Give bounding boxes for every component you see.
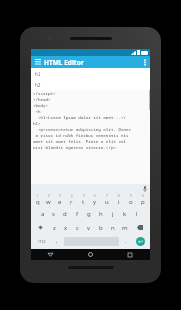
- button[interactable]: </script>: [31, 90, 150, 184]
- staticText: 7: [106, 194, 108, 198]
- staticText: b: [99, 224, 103, 232]
- button[interactable]: v: [83, 221, 95, 234]
- staticText: 0: [142, 194, 144, 198]
- staticText: w: [46, 198, 51, 206]
- staticText: h2: [35, 82, 41, 88]
- staticText: <body>: [33, 103, 49, 109]
- button[interactable]: k: [119, 207, 131, 220]
- button[interactable]: h1: [31, 68, 150, 79]
- button[interactable]: s: [48, 207, 59, 220]
- staticText: 3: [59, 194, 61, 198]
- staticText: s: [52, 210, 55, 218]
- staticText: </script>: [33, 91, 56, 97]
- button[interactable]: 7: [101, 194, 113, 206]
- staticText: <h: [33, 109, 41, 115]
- staticText: x: [64, 224, 68, 232]
- staticText: nisi blandit egestas viverra.</p>: [33, 145, 116, 151]
- button[interactable]: h2: [31, 79, 150, 90]
- staticText: 9: [130, 194, 132, 198]
- button[interactable]: Backspace: [131, 221, 149, 234]
- button[interactable]: .: [120, 235, 131, 248]
- staticText: .: [125, 238, 127, 245]
- staticText: <h1>Lorem Ipsum dolor sit amet...</: [33, 115, 126, 121]
- button[interactable]: 1: [32, 194, 43, 206]
- button[interactable]: 4: [65, 194, 77, 206]
- button[interactable]: ,: [51, 235, 63, 248]
- button[interactable]: z: [49, 221, 60, 234]
- staticText: r: [70, 198, 73, 206]
- staticText: <p>consectetur adipiscing elit. Donec: [33, 127, 131, 133]
- button[interactable]: 9: [125, 194, 137, 206]
- staticText: o: [129, 198, 133, 206]
- staticText: v: [87, 224, 91, 232]
- staticText: h: [99, 210, 103, 218]
- button[interactable]: 3: [54, 194, 65, 206]
- staticText: g: [87, 210, 91, 218]
- button[interactable]: g: [83, 207, 95, 220]
- button[interactable]: More options: [140, 56, 150, 68]
- button[interactable]: 6: [89, 194, 101, 206]
- staticText: m: [122, 224, 128, 232]
- button[interactable]: c: [71, 221, 83, 234]
- staticText: h1>: [33, 121, 41, 127]
- staticText: n: [111, 224, 115, 232]
- button[interactable]: Shift: [32, 221, 49, 234]
- staticText: p: [141, 198, 145, 206]
- staticText: c: [76, 224, 79, 232]
- staticText: i: [118, 198, 120, 206]
- button[interactable]: Back: [31, 249, 70, 260]
- staticText: 8: [118, 194, 120, 198]
- staticText: </head>: [33, 97, 51, 103]
- staticText: 4: [71, 194, 73, 198]
- staticText: q: [36, 198, 40, 206]
- staticText: f: [76, 210, 79, 218]
- button[interactable]: 2: [43, 194, 54, 206]
- button[interactable]: a: [37, 207, 48, 220]
- staticText: e: [58, 198, 62, 206]
- staticText: a: [41, 210, 45, 218]
- staticText: j: [112, 210, 114, 218]
- staticText: 2: [48, 194, 50, 198]
- staticText: amet sit amet felis. Proin a elit vol: [33, 139, 126, 145]
- button[interactable]: Open navigation drawer: [31, 56, 44, 68]
- staticText: HTML Editor: [44, 58, 84, 67]
- staticText: ,: [56, 238, 58, 245]
- button[interactable]: 8: [113, 194, 125, 206]
- button[interactable]: d: [59, 207, 71, 220]
- staticText: a risus id nibh finibus venenatis nis: [33, 133, 129, 139]
- staticText: 6: [94, 194, 96, 198]
- button[interactable]: m: [119, 221, 131, 234]
- staticText: l: [136, 210, 138, 218]
- button[interactable]: f: [71, 207, 83, 220]
- button[interactable]: 5: [77, 194, 89, 206]
- staticText: ?123: [38, 239, 46, 244]
- button[interactable]: l: [131, 207, 143, 220]
- staticText: k: [123, 210, 127, 218]
- button[interactable]: x: [60, 221, 71, 234]
- staticText: 5: [83, 194, 85, 198]
- staticText: 1: [37, 194, 39, 198]
- staticText: z: [53, 224, 56, 232]
- staticText: d: [63, 210, 67, 218]
- button[interactable]: j: [107, 207, 119, 220]
- button[interactable]: b: [95, 221, 107, 234]
- button[interactable]: Voice input: [143, 186, 147, 192]
- button[interactable]: ?123: [32, 235, 51, 248]
- button[interactable]: Recent apps: [110, 249, 150, 260]
- staticText: y: [93, 198, 97, 206]
- button[interactable]: Home: [70, 249, 110, 260]
- button[interactable]: h: [95, 207, 107, 220]
- staticText: h1: [35, 71, 41, 77]
- staticText: u: [105, 198, 109, 206]
- button[interactable]: n: [107, 221, 119, 234]
- button[interactable]: Enter: [136, 237, 145, 246]
- staticText: t: [82, 198, 85, 206]
- button[interactable]: 0: [137, 194, 149, 206]
